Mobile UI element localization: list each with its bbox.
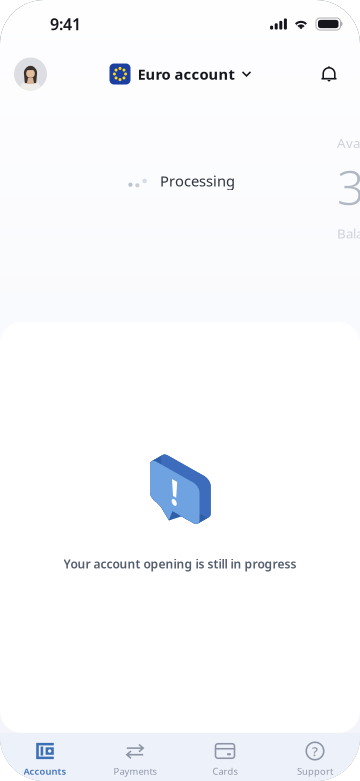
button[interactable]: Profile — [14, 57, 47, 90]
button[interactable]: Notifications — [314, 59, 344, 89]
button[interactable]: ? — [270, 733, 360, 781]
button[interactable]: Payments — [90, 733, 180, 781]
staticText: ? — [312, 742, 318, 760]
staticText: 32 — [337, 155, 360, 218]
staticText: Accounts — [23, 765, 66, 777]
staticText: Available — [337, 134, 360, 152]
staticText: Processing — [160, 171, 235, 190]
button[interactable]: Cards — [180, 733, 270, 781]
staticText: Payments — [113, 765, 156, 777]
staticText: Balance — [337, 224, 360, 242]
staticText: Your account opening is still in progres… — [63, 556, 296, 572]
staticText: Support — [297, 765, 333, 777]
staticText: Euro account — [137, 64, 234, 84]
staticText: 9:41 — [50, 13, 81, 35]
button[interactable]: Accounts — [0, 733, 90, 781]
staticText: Cards — [212, 765, 237, 777]
button[interactable]: Euro account — [109, 63, 251, 84]
